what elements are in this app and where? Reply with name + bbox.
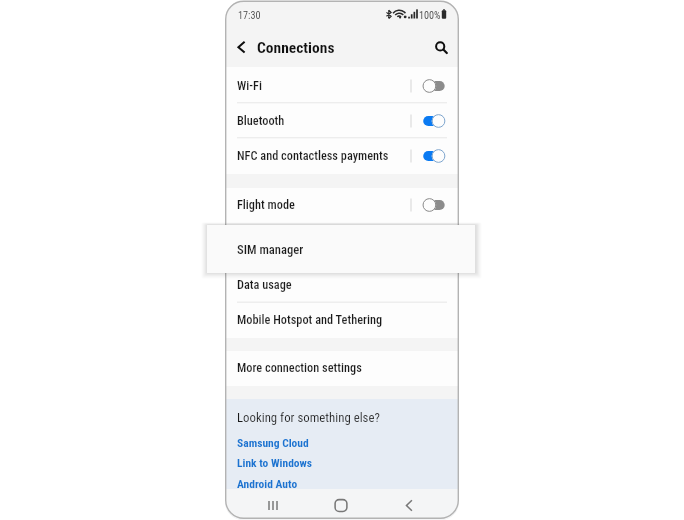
button[interactable]: Link to Windows xyxy=(237,456,313,469)
button[interactable]: NFC and contactless payments xyxy=(225,138,459,173)
staticText: Data usage xyxy=(237,278,292,292)
button[interactable]: SIM manager xyxy=(225,232,459,267)
staticText: 17:30 xyxy=(238,10,261,22)
staticText: Android Auto xyxy=(237,477,298,490)
button[interactable]: Toggle on xyxy=(409,144,448,168)
button[interactable]: Samsung Cloud xyxy=(237,436,309,449)
staticText: More connection settings xyxy=(237,361,362,375)
button[interactable]: SIM manager xyxy=(207,225,475,273)
button[interactable]: Recents xyxy=(259,493,287,518)
staticText: Flight mode xyxy=(237,198,295,212)
button[interactable]: Mobile Hotspot and Tethering xyxy=(225,302,459,337)
button[interactable]: Toggle on xyxy=(409,109,448,133)
staticText: Link to Windows xyxy=(237,456,313,469)
staticText: Looking for something else? xyxy=(237,410,380,425)
staticText: NFC and contactless payments xyxy=(237,149,389,163)
button[interactable]: Back xyxy=(229,34,255,60)
button[interactable]: Android Auto xyxy=(237,477,298,490)
button[interactable]: Bluetooth xyxy=(225,103,459,138)
button[interactable]: Home xyxy=(327,493,355,518)
staticText: SIM manager xyxy=(237,243,302,257)
staticText: Wi-Fi xyxy=(237,79,262,93)
staticText: Connections xyxy=(257,39,335,57)
button[interactable]: Flight mode xyxy=(225,187,459,222)
button[interactable]: Toggle off xyxy=(409,193,448,217)
button[interactable]: Search xyxy=(428,34,452,58)
button[interactable]: Back xyxy=(395,493,423,518)
button[interactable]: Toggle off xyxy=(409,74,448,98)
staticText: Bluetooth xyxy=(237,114,285,128)
staticText: Mobile Hotspot and Tethering xyxy=(237,313,383,327)
staticText: 100% xyxy=(419,10,441,22)
staticText: Samsung Cloud xyxy=(237,436,309,449)
staticText: SIM manager xyxy=(237,242,304,257)
button[interactable]: More connection settings xyxy=(225,350,459,385)
button[interactable]: Data usage xyxy=(225,267,459,302)
button[interactable]: Wi-Fi xyxy=(225,68,459,103)
